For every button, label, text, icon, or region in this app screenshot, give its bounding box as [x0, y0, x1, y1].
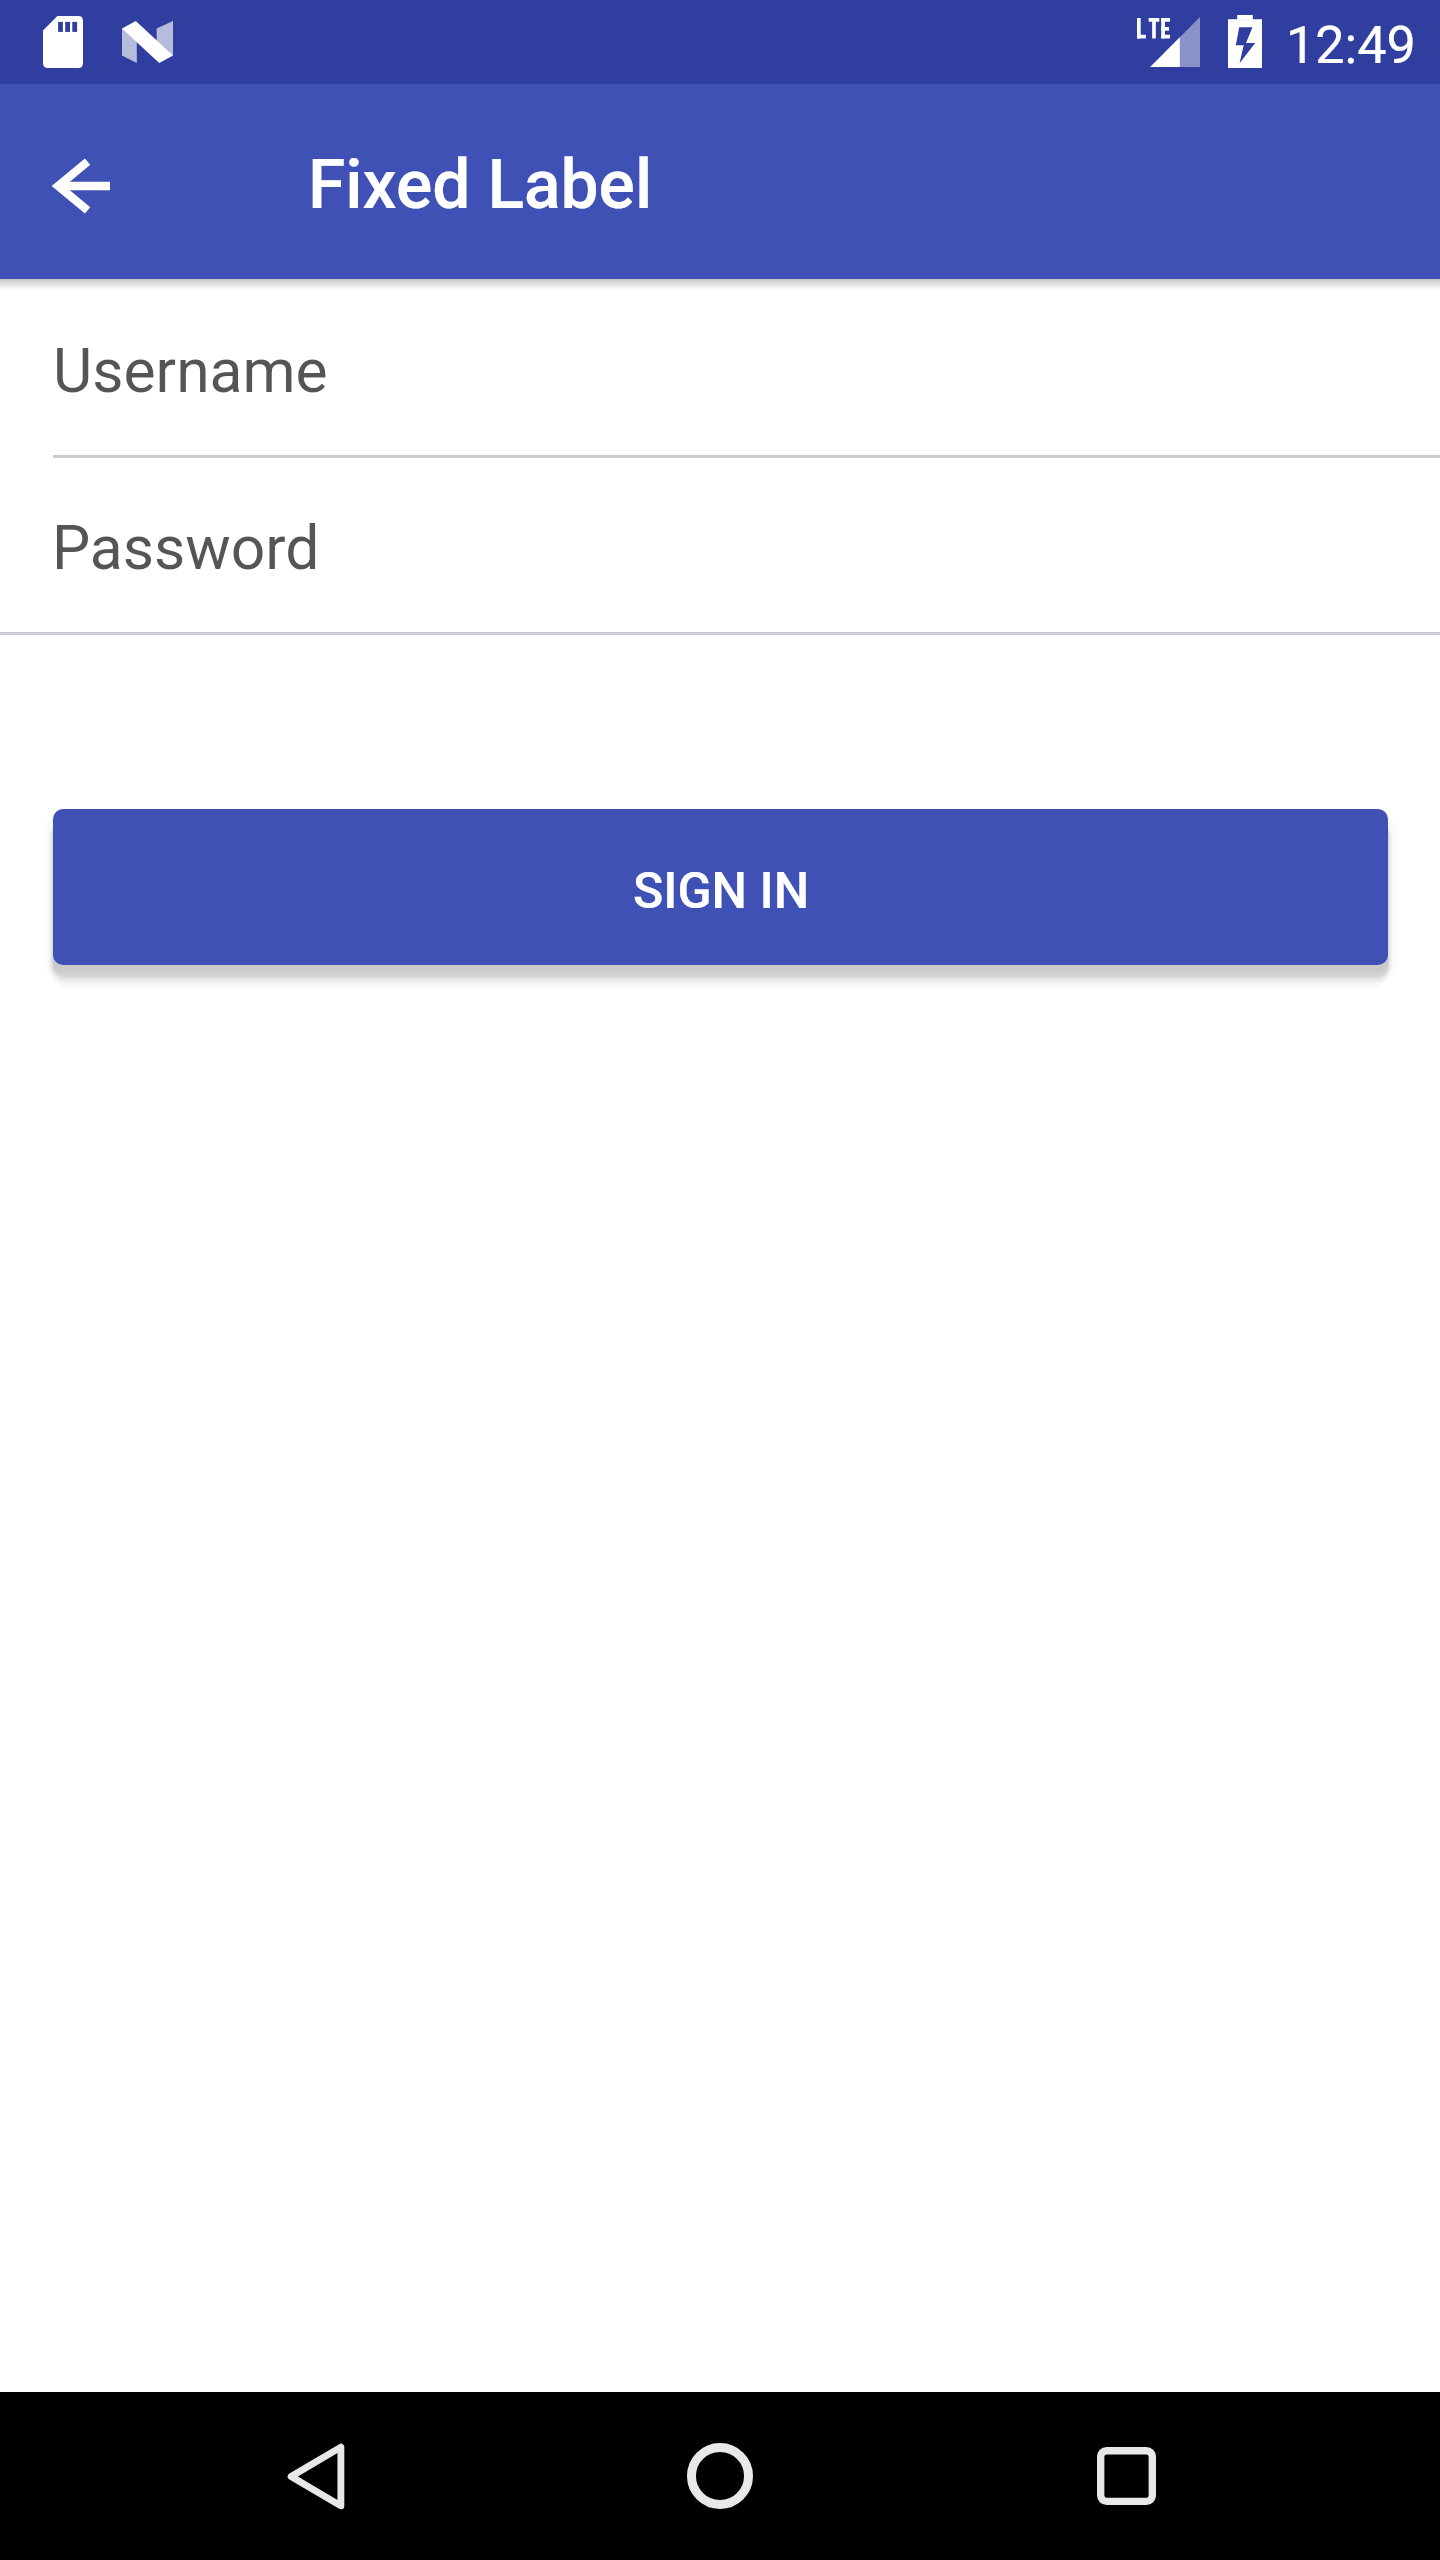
button[interactable]: Password — [0, 458, 1440, 632]
button[interactable]: SIGN IN — [53, 809, 1388, 965]
staticText: Username — [53, 336, 328, 407]
staticText: Password — [52, 513, 320, 584]
button[interactable]: Home — [640, 2394, 800, 2558]
button[interactable]: Username — [0, 284, 1440, 455]
staticText: SIGN IN — [633, 862, 810, 921]
button[interactable]: Back — [236, 2394, 396, 2558]
staticText: 12:49 — [1286, 15, 1416, 76]
button[interactable]: Recent apps — [1046, 2394, 1206, 2558]
staticText: Fixed Label — [308, 145, 653, 224]
button[interactable]: Navigate up — [30, 134, 134, 238]
